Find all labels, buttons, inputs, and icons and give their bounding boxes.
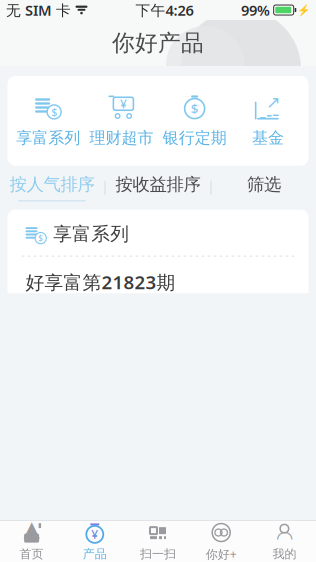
staticText: 筛选 (247, 174, 281, 195)
staticText: 按人气排序 (9, 174, 94, 195)
button[interactable]: 按收益排序 (105, 172, 210, 204)
button[interactable]: 按人气排序 (0, 172, 104, 204)
staticText: $ (51, 105, 57, 119)
button[interactable]: 筛选 (211, 172, 316, 204)
button[interactable]: 好享富第21823期 (7, 257, 308, 374)
staticText: 理财超市 (89, 128, 153, 148)
staticText: 按收益排序 (115, 174, 200, 195)
staticText: ¥ (91, 526, 98, 542)
staticText: 好享富第21823期 (25, 270, 175, 294)
button[interactable]: ▲ (0, 519, 63, 562)
staticText: 产品 (83, 547, 107, 561)
button[interactable]: 查看更多产品>> (7, 493, 308, 538)
staticText: 我的 (272, 547, 296, 561)
staticText: 99% (241, 0, 270, 20)
staticText: 享富系列 (16, 128, 80, 148)
button[interactable]: ¥ (85, 90, 158, 152)
staticText: ↗ (266, 92, 281, 112)
button[interactable]: $ (158, 90, 231, 152)
staticText: 查看更多产品>> (101, 505, 215, 526)
button[interactable]: 你好+ (190, 518, 253, 562)
staticText: 基金 (252, 128, 284, 148)
button[interactable]: 扫一扫 (126, 519, 190, 562)
staticText: 首页 (20, 547, 44, 561)
button[interactable]: ¥ (63, 519, 126, 562)
button[interactable]: ↗ (231, 90, 304, 152)
staticText: 银行定期 (163, 128, 227, 148)
staticText: ◠ (276, 526, 293, 549)
button[interactable]: $ (11, 90, 85, 152)
staticText: 你好+ (206, 546, 237, 562)
staticText: $ (191, 100, 199, 117)
button[interactable]: ◠ (253, 519, 316, 562)
staticText: $ (38, 233, 43, 243)
staticText: ¥ (120, 96, 127, 112)
staticText: ▲ (24, 516, 40, 541)
staticText: 无 SIM 卡 (6, 0, 71, 20)
staticText: 下午4:26 (135, 0, 193, 20)
staticText: ⚡ (297, 4, 310, 16)
staticText: 扫一扫 (140, 547, 176, 561)
staticText: 享富系列 (53, 223, 129, 246)
staticText: 你好产品 (112, 29, 204, 57)
